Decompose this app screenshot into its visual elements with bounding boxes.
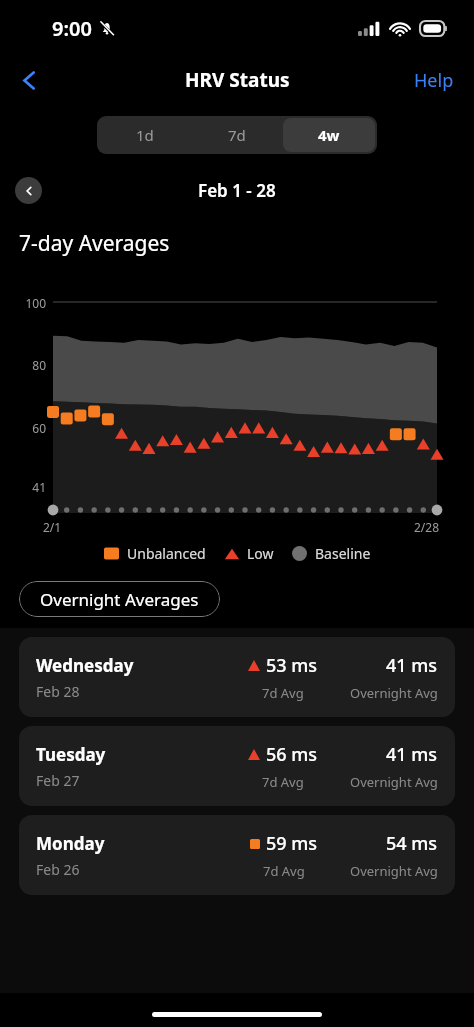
staticText: Feb 1 - 28 bbox=[198, 179, 276, 202]
staticText: 7-day Averages bbox=[19, 229, 170, 258]
button[interactable]: 4w bbox=[283, 118, 375, 152]
staticText: 56 ms bbox=[266, 742, 318, 767]
staticText: Wednesday bbox=[36, 654, 134, 677]
staticText: Overnight Avg bbox=[350, 862, 438, 880]
staticText: Feb 26 bbox=[36, 860, 80, 879]
button[interactable]: Tuesday bbox=[19, 726, 455, 806]
staticText: Overnight Avg bbox=[350, 684, 438, 702]
button[interactable]: Help bbox=[408, 62, 460, 99]
staticText: Tuesday bbox=[36, 743, 106, 766]
staticText: 41 ms bbox=[386, 742, 438, 767]
staticText: 80 bbox=[0, 357, 46, 373]
staticText: 100 bbox=[0, 295, 46, 311]
staticText: Monday bbox=[36, 832, 105, 855]
staticText: 7d Avg bbox=[262, 684, 304, 702]
button[interactable]: Overnight Averages bbox=[19, 581, 220, 617]
staticText: 4w bbox=[318, 125, 340, 145]
staticText: 9:00 bbox=[52, 15, 92, 42]
staticText: 2/1 bbox=[43, 519, 62, 535]
button[interactable]: Previous period bbox=[15, 177, 42, 204]
staticText: 2/28 bbox=[414, 519, 440, 535]
staticText: 53 ms bbox=[266, 653, 318, 678]
staticText: Baseline bbox=[315, 544, 371, 563]
staticText: HRV Status bbox=[185, 67, 290, 93]
staticText: Overnight Avg bbox=[350, 773, 438, 791]
staticText: 41 bbox=[0, 479, 46, 495]
staticText: 41 ms bbox=[386, 653, 438, 678]
button[interactable]: Back bbox=[6, 57, 52, 103]
staticText: 7d Avg bbox=[263, 862, 305, 880]
staticText: Help bbox=[414, 68, 454, 93]
staticText: Overnight Averages bbox=[40, 588, 199, 611]
button[interactable]: Wednesday bbox=[19, 637, 455, 717]
staticText: 7d bbox=[228, 125, 246, 145]
button[interactable]: Monday bbox=[19, 815, 455, 895]
staticText: Feb 27 bbox=[36, 771, 80, 790]
staticText: 1d bbox=[136, 125, 154, 145]
staticText: 59 ms bbox=[266, 831, 318, 856]
staticText: 60 bbox=[0, 420, 46, 436]
staticText: Unbalanced bbox=[127, 544, 206, 563]
staticText: 7d Avg bbox=[262, 773, 304, 791]
staticText: Low bbox=[247, 544, 274, 563]
button[interactable]: 1d bbox=[99, 118, 191, 152]
button[interactable]: 7d bbox=[191, 118, 283, 152]
staticText: Feb 28 bbox=[36, 682, 80, 701]
staticText: 54 ms bbox=[386, 831, 438, 856]
